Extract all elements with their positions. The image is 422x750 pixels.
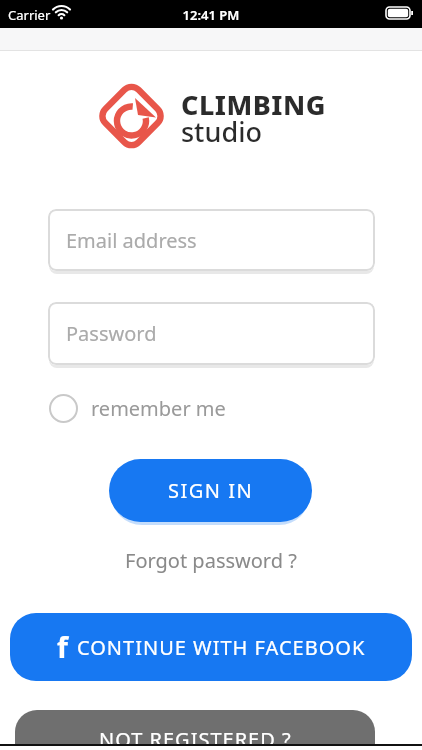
staticText: f — [57, 628, 68, 666]
button[interactable]: NOT REGISTERED ? — [15, 710, 375, 750]
staticText: remember me — [91, 395, 226, 422]
staticText: CLIMBING — [181, 86, 326, 123]
staticText: Forgot password ? — [125, 547, 297, 574]
staticText: Email address — [66, 227, 197, 254]
button[interactable]: SIGN IN — [109, 459, 312, 522]
button[interactable]: Password — [48, 302, 375, 365]
staticText: NOT REGISTERED ? — [99, 726, 292, 750]
staticText: CONTINUE WITH FACEBOOK — [77, 634, 366, 661]
staticText: Carrier — [8, 6, 51, 24]
button[interactable]: Email address — [48, 209, 375, 271]
button[interactable]: Forgot password ? — [125, 546, 297, 574]
button[interactable]: remember me — [49, 394, 226, 423]
staticText: SIGN IN — [168, 477, 254, 504]
staticText: studio — [181, 113, 262, 150]
staticText: Password — [66, 320, 157, 347]
button[interactable]: f — [10, 613, 412, 681]
staticText: 12:41 PM — [0, 6, 422, 24]
